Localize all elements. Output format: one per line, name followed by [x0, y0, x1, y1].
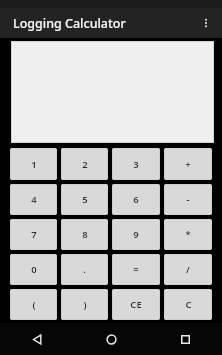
button[interactable]: /: [164, 254, 212, 285]
button[interactable]: +: [164, 148, 212, 180]
staticText: (: [32, 298, 36, 311]
button[interactable]: 6: [112, 184, 160, 215]
button[interactable]: 1: [10, 148, 57, 180]
staticText: CE: [130, 298, 142, 311]
button[interactable]: (: [10, 289, 57, 320]
staticText: =: [133, 263, 139, 276]
button[interactable]: 8: [61, 219, 108, 250]
button[interactable]: 4: [10, 184, 57, 215]
staticText: 4: [31, 193, 37, 206]
button[interactable]: Home: [74, 323, 148, 355]
button[interactable]: =: [112, 254, 160, 285]
staticText: 8: [82, 228, 88, 241]
button[interactable]: 5: [61, 184, 108, 215]
staticText: Logging Calculator: [13, 15, 126, 32]
staticText: 5: [82, 193, 88, 206]
button[interactable]: More options: [193, 10, 219, 36]
staticText: /: [186, 263, 190, 276]
button[interactable]: 3: [112, 148, 160, 180]
button[interactable]: C: [164, 289, 212, 320]
button[interactable]: .: [61, 254, 108, 285]
button[interactable]: 7: [10, 219, 57, 250]
staticText: *: [185, 228, 191, 241]
staticText: 0: [31, 263, 37, 276]
button[interactable]: Recent apps: [148, 323, 222, 355]
staticText: .: [83, 263, 86, 276]
staticText: 3: [133, 158, 139, 171]
staticText: 6: [133, 193, 139, 206]
button[interactable]: Back: [0, 323, 74, 355]
button[interactable]: 9: [112, 219, 160, 250]
staticText: 1: [31, 158, 37, 171]
button[interactable]: 2: [61, 148, 108, 180]
staticText: -: [186, 193, 190, 206]
staticText: +: [185, 158, 191, 171]
button[interactable]: [11, 41, 214, 143]
button[interactable]: 0: [10, 254, 57, 285]
button[interactable]: -: [164, 184, 212, 215]
staticText: 7: [31, 228, 37, 241]
staticText: ): [83, 298, 87, 311]
button[interactable]: CE: [112, 289, 160, 320]
button[interactable]: ): [61, 289, 108, 320]
staticText: C: [185, 298, 192, 311]
staticText: 9: [133, 228, 139, 241]
button[interactable]: *: [164, 219, 212, 250]
staticText: 2: [82, 158, 88, 171]
